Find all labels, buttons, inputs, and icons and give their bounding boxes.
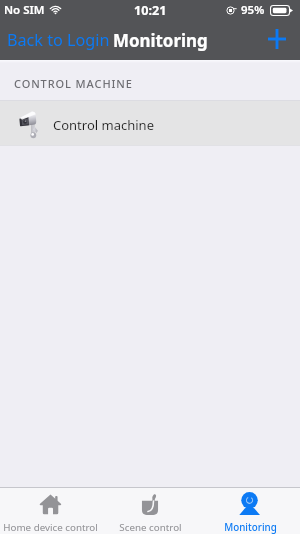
staticText: 95% (241, 2, 265, 18)
button[interactable]: Control machine (0, 100, 300, 146)
staticText: No SIM (4, 2, 45, 18)
button[interactable]: Scene control (100, 488, 200, 534)
button[interactable]: Home device control (0, 488, 100, 534)
staticText: CONTROL MACHINE (14, 76, 133, 91)
button[interactable]: Back to Login (0, 25, 113, 55)
staticText: Monitoring (113, 29, 208, 52)
staticText: Control machine (53, 116, 154, 134)
staticText: 10:21 (134, 2, 167, 19)
button[interactable]: Monitoring (200, 488, 300, 534)
staticText: Scene control (119, 521, 182, 534)
staticText: Back to Login (7, 29, 110, 51)
staticText: Home device control (3, 521, 98, 534)
staticText: Monitoring (224, 521, 277, 534)
button[interactable]: Add (262, 25, 292, 55)
